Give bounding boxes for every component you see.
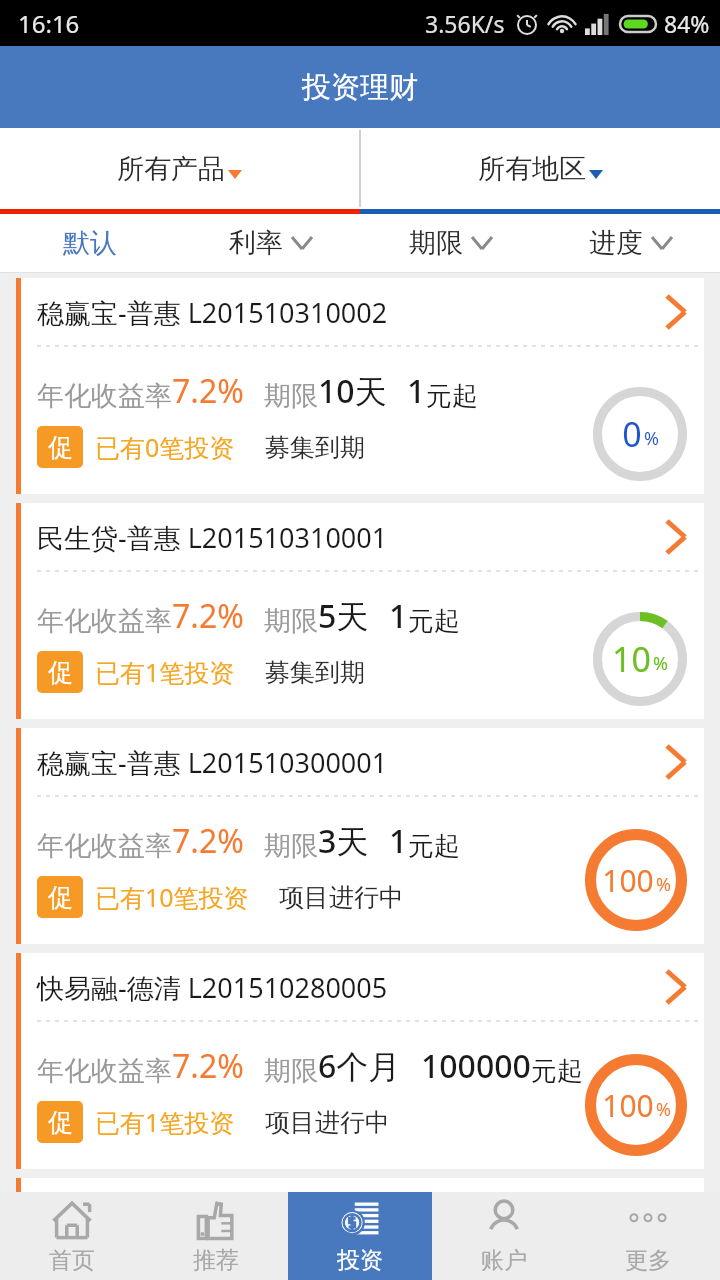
- staticText: 元起: [408, 605, 460, 638]
- staticText: 更多: [625, 1246, 671, 1275]
- staticText: 利率: [229, 226, 283, 260]
- button[interactable]: 民生贷-普惠 L201510310001: [16, 503, 704, 719]
- button[interactable]: 利率: [180, 214, 360, 272]
- staticText: 期限: [264, 604, 318, 638]
- staticText: 10天: [318, 369, 387, 413]
- button[interactable]: 所有产品: [0, 128, 359, 209]
- staticText: 100: [602, 1085, 654, 1126]
- staticText: 100000: [421, 1044, 531, 1088]
- staticText: 期限: [264, 1054, 318, 1088]
- staticText: 1: [389, 819, 408, 863]
- staticText: 账户: [481, 1246, 527, 1275]
- staticText: 推荐: [193, 1246, 239, 1275]
- staticText: 年化收益率: [37, 604, 172, 638]
- staticText: 期限: [264, 829, 318, 863]
- staticText: 促: [48, 1107, 73, 1138]
- button[interactable]: 查看详情: [648, 284, 704, 340]
- staticText: 投资: [337, 1246, 383, 1275]
- button[interactable]: 推荐: [144, 1192, 288, 1280]
- staticText: 期限: [264, 379, 318, 413]
- staticText: 募集到期: [265, 657, 365, 688]
- button[interactable]: 稳赢宝-普惠 L201510310002: [16, 278, 704, 494]
- button[interactable]: 首页: [0, 1192, 144, 1280]
- button[interactable]: 快易融-德清 L201510280005: [16, 953, 704, 1169]
- staticText: 已有10笔投资: [95, 880, 249, 914]
- button[interactable]: 查看详情: [648, 734, 704, 790]
- staticText: 年化收益率: [37, 1054, 172, 1088]
- staticText: 促: [48, 657, 73, 688]
- button[interactable]: 期限: [360, 214, 540, 272]
- button[interactable]: 更多: [576, 1192, 720, 1280]
- staticText: %: [656, 1097, 671, 1122]
- staticText: 元起: [408, 830, 460, 863]
- staticText: 10: [612, 636, 651, 682]
- staticText: 默认: [63, 226, 117, 260]
- staticText: 16:16: [18, 7, 80, 40]
- button[interactable]: 查看详情: [648, 509, 704, 565]
- staticText: 元起: [531, 1055, 583, 1088]
- staticText: 所有地区: [478, 152, 586, 186]
- staticText: 1: [389, 594, 408, 638]
- staticText: 3天: [318, 819, 369, 863]
- staticText: 7.2%: [172, 369, 244, 413]
- staticText: %: [653, 651, 668, 676]
- staticText: 84%: [664, 8, 710, 39]
- staticText: 期限: [409, 226, 463, 260]
- staticText: 年化收益率: [37, 829, 172, 863]
- staticText: 5天: [318, 594, 369, 638]
- staticText: 6个月: [318, 1044, 401, 1088]
- staticText: 稳赢宝-普惠 L201510300001: [37, 744, 388, 781]
- staticText: 项目进行中: [265, 1107, 390, 1138]
- staticText: 0: [622, 411, 642, 457]
- staticText: 7.2%: [172, 594, 244, 638]
- button[interactable]: 稳赢宝-普惠 L201510300001: [16, 728, 704, 944]
- staticText: 投资理财: [302, 69, 418, 106]
- staticText: 促: [48, 432, 73, 463]
- staticText: 1: [407, 369, 426, 413]
- staticText: %: [644, 426, 659, 451]
- staticText: 首页: [49, 1246, 95, 1275]
- staticText: 募集到期: [265, 432, 365, 463]
- staticText: 快易融-德清 L201510280005: [37, 969, 388, 1006]
- staticText: 已有1笔投资: [95, 655, 235, 689]
- staticText: 7.2%: [172, 819, 244, 863]
- staticText: 3.56K/s: [425, 8, 505, 39]
- button[interactable]: 所有地区: [361, 128, 720, 209]
- button[interactable]: 账户: [432, 1192, 576, 1280]
- staticText: 已有0笔投资: [95, 430, 235, 464]
- button[interactable]: 查看详情: [648, 959, 704, 1015]
- staticText: 100: [602, 860, 654, 901]
- button[interactable]: 进度: [540, 214, 720, 272]
- staticText: 已有1笔投资: [95, 1105, 235, 1139]
- staticText: 民生贷-普惠 L201510310001: [37, 519, 388, 556]
- staticText: 项目进行中: [279, 882, 404, 913]
- staticText: 促: [48, 882, 73, 913]
- button[interactable]: 默认: [0, 214, 180, 272]
- button[interactable]: 投资: [288, 1192, 432, 1280]
- staticText: 年化收益率: [37, 379, 172, 413]
- staticText: 元起: [426, 380, 478, 413]
- staticText: 进度: [589, 226, 643, 260]
- staticText: %: [656, 872, 671, 897]
- staticText: 所有产品: [117, 152, 225, 186]
- staticText: 稳赢宝-普惠 L201510310002: [37, 294, 388, 331]
- staticText: 7.2%: [172, 1044, 244, 1088]
